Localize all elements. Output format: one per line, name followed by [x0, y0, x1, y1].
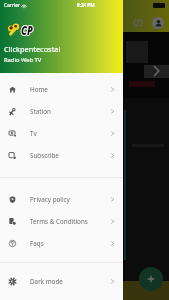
staticText: Carrier: [4, 2, 20, 9]
staticText: Dark mode: [30, 277, 63, 286]
staticText: Radio Web TV: [4, 56, 42, 64]
staticText: Terms & Conditions: [30, 217, 88, 226]
staticText: 9:24 PM: [77, 2, 95, 8]
button[interactable]: Station: [0, 100, 123, 122]
button[interactable]: Dark mode: [0, 270, 123, 292]
staticText: Station: [30, 107, 51, 116]
staticText: CP: [21, 23, 34, 36]
staticText: Subscribe: [30, 151, 59, 160]
button[interactable]: Cast: [133, 18, 143, 28]
button[interactable]: Faqs: [0, 232, 123, 254]
staticText: Faqs: [30, 239, 44, 248]
button[interactable]: Profile: [152, 17, 164, 29]
staticText: CP: [21, 24, 34, 37]
button[interactable]: Add: [139, 267, 163, 291]
staticText: CP: [22, 23, 34, 36]
staticText: CP: [21, 22, 34, 35]
staticText: Privacy policy: [30, 195, 70, 204]
button[interactable]: Privacy policy: [0, 188, 123, 210]
staticText: CP: [20, 23, 33, 36]
button[interactable]: Tv: [0, 122, 123, 144]
staticText: Tv: [30, 129, 37, 138]
staticText: Home: [30, 85, 48, 94]
button[interactable]: Terms & Conditions: [0, 210, 123, 232]
button[interactable]: Home: [0, 78, 123, 100]
staticText: Clickpentecostal: [4, 44, 61, 54]
button[interactable]: Subscribe: [0, 144, 123, 166]
